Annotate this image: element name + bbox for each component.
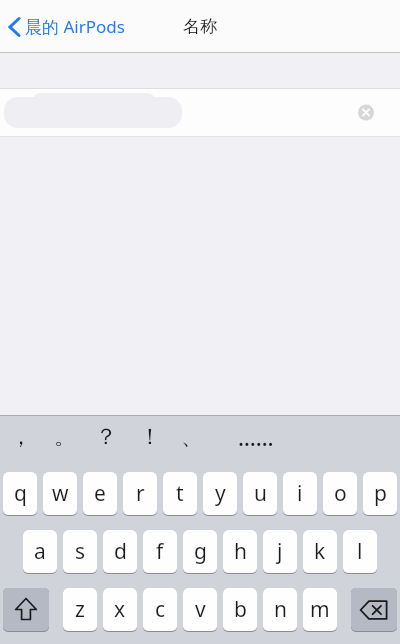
staticText: w <box>52 479 69 508</box>
button[interactable]: d <box>103 530 137 574</box>
staticText: n <box>274 595 287 624</box>
button[interactable]: u <box>243 472 277 516</box>
button[interactable]: 、 <box>181 423 203 451</box>
staticText: f <box>156 537 164 566</box>
button[interactable]: w <box>43 472 77 516</box>
staticText: p <box>374 479 387 508</box>
button[interactable]: t <box>163 472 197 516</box>
staticText: j <box>277 537 283 566</box>
button[interactable]: r <box>123 472 157 516</box>
button[interactable]: l <box>343 530 377 574</box>
staticText: d <box>114 537 127 566</box>
staticText: h <box>234 537 247 566</box>
button[interactable]: c <box>143 588 177 632</box>
staticText: z <box>75 595 85 624</box>
button[interactable]: ， <box>10 423 32 451</box>
staticText: r <box>136 479 145 508</box>
button[interactable]: g <box>183 530 217 574</box>
staticText: i <box>297 479 303 508</box>
staticText: c <box>155 595 166 624</box>
button[interactable]: …… <box>238 422 274 452</box>
button[interactable]: i <box>283 472 317 516</box>
button[interactable]: y <box>203 472 237 516</box>
staticText: k <box>314 537 326 566</box>
button[interactable]: o <box>323 472 357 516</box>
staticText: u <box>254 479 267 508</box>
button[interactable]: h <box>223 530 257 574</box>
staticText: m <box>310 595 330 624</box>
button[interactable]: k <box>303 530 337 574</box>
button[interactable] <box>0 89 400 136</box>
button[interactable]: b <box>223 588 257 632</box>
staticText: a <box>34 537 46 566</box>
staticText: 晨的 AirPods <box>25 15 125 38</box>
button[interactable]: z <box>63 588 97 632</box>
button[interactable]: v <box>183 588 217 632</box>
button[interactable]: m <box>303 588 337 632</box>
staticText: 名称 <box>183 16 217 37</box>
staticText: o <box>334 479 347 508</box>
button[interactable]: ！ <box>139 423 161 451</box>
button[interactable]: j <box>263 530 297 574</box>
button[interactable]: p <box>363 472 397 516</box>
button[interactable]: x <box>103 588 137 632</box>
staticText: q <box>14 479 27 508</box>
button[interactable] <box>3 588 49 632</box>
staticText: b <box>234 595 247 624</box>
staticText: y <box>215 479 226 508</box>
staticText: g <box>194 537 207 566</box>
button[interactable]: ？ <box>95 423 117 451</box>
staticText: x <box>114 595 126 624</box>
staticText: e <box>94 479 106 508</box>
button[interactable] <box>351 588 397 632</box>
button[interactable]: s <box>63 530 97 574</box>
button[interactable]: 。 <box>54 423 76 451</box>
staticText: v <box>195 595 206 624</box>
staticText: t <box>176 479 184 508</box>
staticText: l <box>357 537 363 566</box>
button[interactable]: n <box>263 588 297 632</box>
button[interactable]: 晨的 AirPods <box>8 15 125 38</box>
button[interactable]: f <box>143 530 177 574</box>
button[interactable]: a <box>23 530 57 574</box>
button[interactable]: e <box>83 472 117 516</box>
button[interactable]: q <box>3 472 37 516</box>
staticText: s <box>75 537 86 566</box>
